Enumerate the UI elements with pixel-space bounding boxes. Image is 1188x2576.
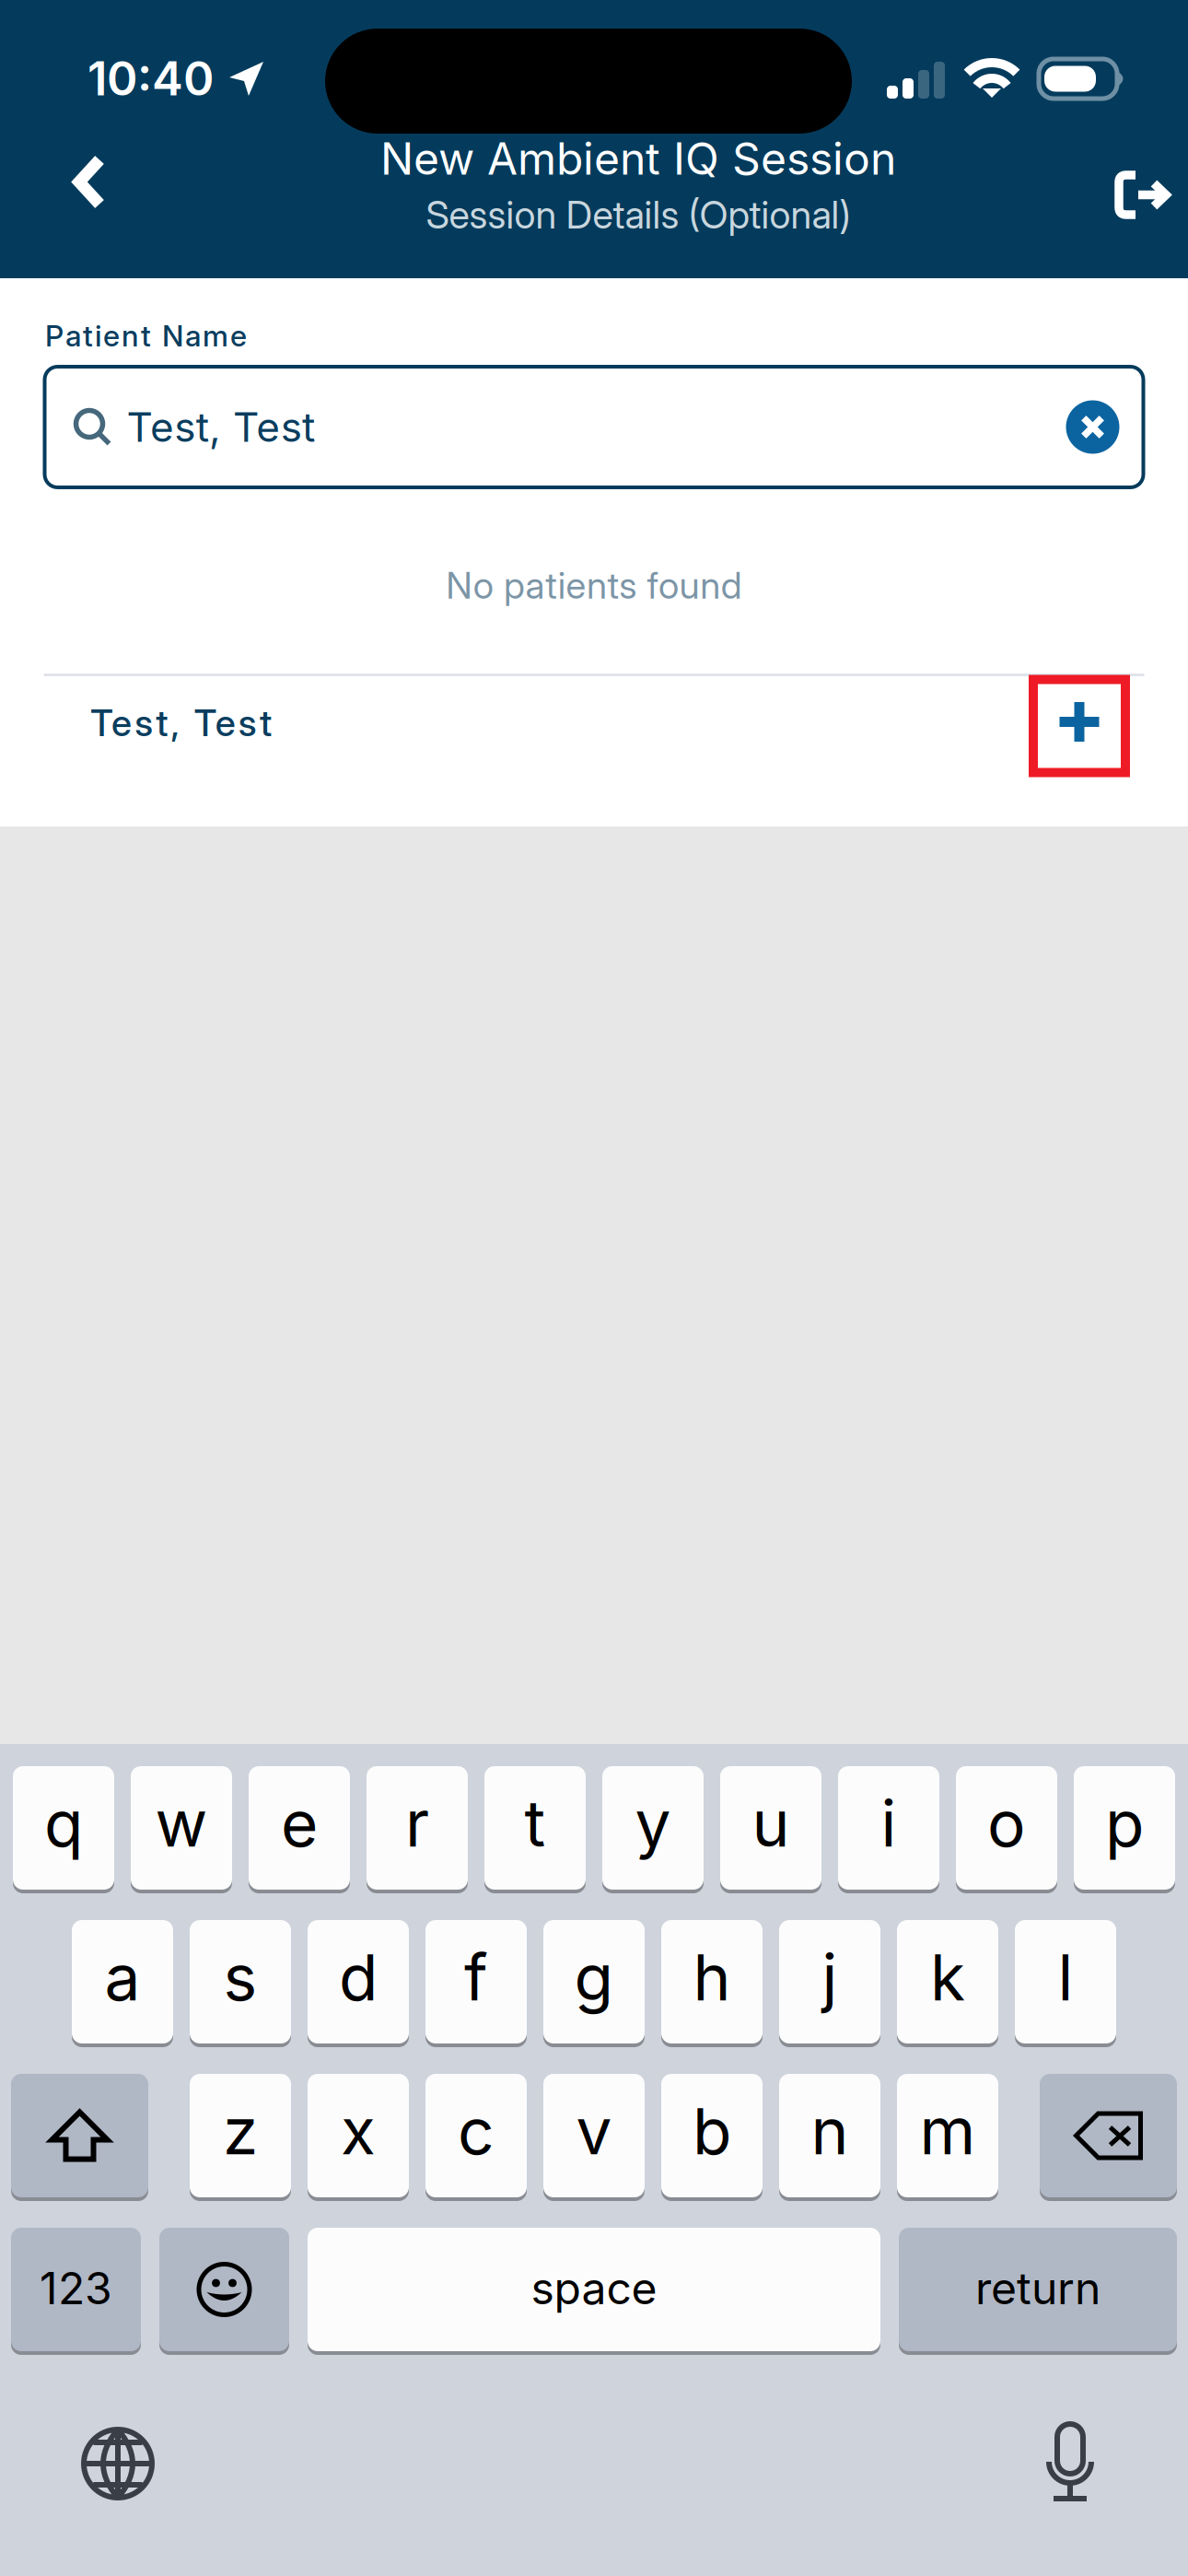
staticText: Test, Test [90, 700, 272, 745]
staticText: w [155, 1785, 208, 1862]
staticText: Patient Name [45, 318, 247, 354]
staticText: g [574, 1939, 614, 2016]
staticText: Session Details (Optional) [426, 192, 850, 238]
button[interactable]: e [249, 1766, 350, 1893]
staticText: p [1105, 1785, 1144, 1862]
staticText: k [930, 1939, 965, 2016]
button[interactable]: n [779, 2074, 880, 2201]
staticText: New Ambient IQ Session [380, 132, 896, 185]
button[interactable]: Back [17, 129, 161, 234]
staticText: space [531, 2261, 657, 2315]
button[interactable]: h [661, 1920, 763, 2047]
button[interactable]: j [779, 1920, 880, 2047]
staticText: u [752, 1785, 790, 1862]
staticText: e [281, 1785, 318, 1862]
button[interactable]: Next keyboard [44, 2408, 192, 2519]
button[interactable]: m [897, 2074, 998, 2201]
button[interactable]: space [308, 2228, 880, 2355]
button[interactable]: q [13, 1766, 114, 1893]
button[interactable]: Delete [1040, 2074, 1177, 2201]
staticText: n [811, 2092, 849, 2170]
button[interactable]: b [661, 2074, 763, 2201]
staticText: o [987, 1785, 1026, 1862]
staticText: 10:40 [87, 50, 214, 107]
button[interactable]: t [484, 1766, 586, 1893]
staticText: r [405, 1785, 429, 1862]
staticText: b [693, 2092, 731, 2170]
staticText: 123 [40, 2261, 112, 2315]
button[interactable]: a [72, 1920, 173, 2047]
button[interactable]: w [131, 1766, 232, 1893]
button[interactable]: p [1074, 1766, 1175, 1893]
staticText: i [881, 1785, 897, 1862]
button[interactable]: 123 [11, 2228, 141, 2355]
button[interactable]: u [720, 1766, 821, 1893]
staticText: s [223, 1939, 257, 2016]
button[interactable]: Dictation [996, 2408, 1144, 2519]
staticText: j [822, 1939, 838, 2016]
button[interactable]: y [602, 1766, 704, 1893]
button[interactable]: f [425, 1920, 527, 2047]
staticText: v [576, 2092, 612, 2170]
staticText: No patients found [446, 563, 742, 608]
staticText: c [458, 2092, 495, 2170]
staticText: return [975, 2261, 1101, 2315]
button[interactable]: l [1015, 1920, 1116, 2047]
staticText: d [339, 1939, 378, 2016]
staticText: l [1058, 1939, 1073, 2016]
button[interactable]: Test, Test [0, 674, 1188, 771]
button[interactable]: x [308, 2074, 409, 2201]
staticText: x [341, 2092, 376, 2170]
button[interactable]: r [367, 1766, 468, 1893]
staticText: z [223, 2092, 258, 2170]
button[interactable]: Shift [11, 2074, 148, 2201]
button[interactable]: Emoji [159, 2228, 289, 2355]
button[interactable]: k [897, 1920, 998, 2047]
staticText: Test, Test [127, 403, 315, 452]
button[interactable]: d [308, 1920, 409, 2047]
staticText: h [693, 1939, 731, 2016]
button[interactable]: v [543, 2074, 645, 2201]
staticText: y [635, 1785, 671, 1862]
button[interactable]: i [838, 1766, 939, 1893]
staticText: q [44, 1785, 83, 1862]
button[interactable]: o [956, 1766, 1057, 1893]
button[interactable]: g [543, 1920, 645, 2047]
staticText: f [464, 1939, 488, 2016]
button[interactable]: s [190, 1920, 291, 2047]
button[interactable]: z [190, 2074, 291, 2201]
button[interactable]: Log out [1098, 142, 1188, 247]
staticText: a [105, 1939, 140, 2016]
button[interactable]: Clear text [1051, 386, 1134, 468]
staticText: m [920, 2092, 976, 2170]
button[interactable]: c [425, 2074, 527, 2201]
staticText: t [524, 1785, 546, 1862]
button[interactable]: return [899, 2228, 1177, 2355]
